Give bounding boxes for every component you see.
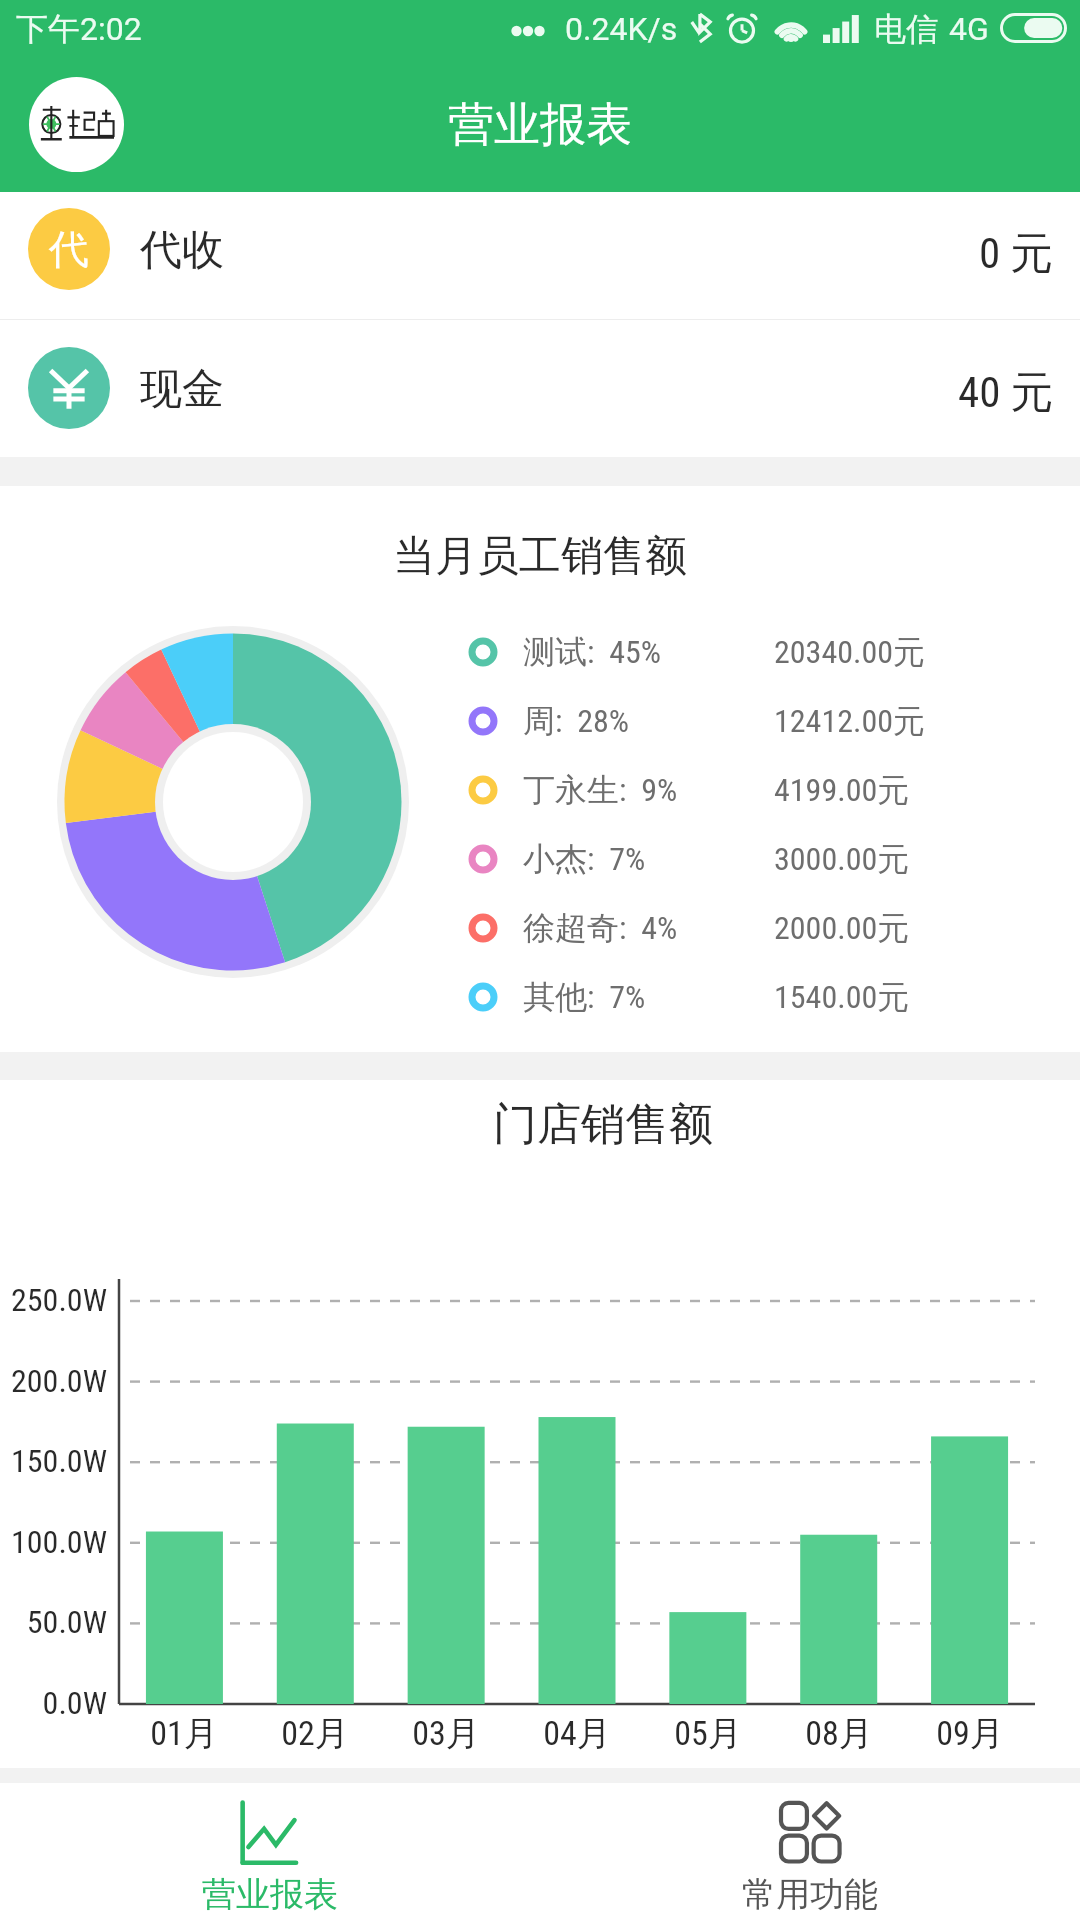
staticText: 其他: 7% — [523, 977, 646, 1017]
staticText: 03月 — [381, 1712, 511, 1755]
staticText: 1540.00元 — [774, 977, 910, 1017]
staticText: 04月 — [512, 1712, 642, 1755]
staticText: 营业报表 — [135, 1873, 405, 1916]
staticText: 0.24K/s — [565, 10, 678, 48]
staticText: 50.0W — [0, 1603, 107, 1641]
staticText: 4199.00元 — [774, 770, 910, 810]
staticText: 3000.00元 — [774, 839, 910, 879]
staticText: 周: 28% — [523, 701, 629, 741]
staticText: 门店销售额 — [403, 1097, 803, 1152]
staticText: 08月 — [774, 1712, 904, 1755]
staticText: 徐超奇: 4% — [523, 908, 678, 948]
staticText: 代 — [49, 224, 89, 274]
staticText: 2000.00元 — [774, 908, 910, 948]
staticText: 200.0W — [0, 1362, 107, 1400]
button[interactable]: 代 — [0, 192, 1080, 319]
staticText: 09月 — [905, 1712, 1035, 1755]
staticText: 250.0W — [0, 1281, 107, 1319]
staticText: 下午2:02 — [16, 9, 142, 49]
staticText: 小杰: 7% — [523, 839, 646, 879]
staticText: 150.0W — [0, 1442, 107, 1480]
button[interactable]: Logo — [29, 77, 124, 172]
staticText: 05月 — [643, 1712, 773, 1755]
staticText: 丁永生: 9% — [523, 770, 678, 810]
staticText: 12412.00元 — [774, 701, 926, 741]
staticText: 电信 — [874, 9, 938, 49]
staticText: 代收 — [140, 224, 224, 277]
button[interactable]: 常用功能 — [675, 1783, 945, 1920]
staticText: 现金 — [140, 363, 224, 416]
staticText: 营业报表 — [448, 96, 632, 154]
staticText: 02月 — [250, 1712, 380, 1755]
staticText: 40 元 — [958, 366, 1054, 420]
staticText: 20340.00元 — [774, 632, 926, 672]
other: 营业报表 — [234, 1801, 298, 1865]
staticText: 4G — [949, 10, 989, 48]
staticText: 0.0W — [0, 1684, 107, 1722]
button[interactable]: 营业报表 — [135, 1783, 405, 1920]
staticText: 100.0W — [0, 1523, 107, 1561]
staticText: 当月员工销售额 — [0, 530, 1080, 583]
other: 常用功能 — [781, 1801, 845, 1865]
staticText: 常用功能 — [675, 1873, 945, 1916]
button[interactable]: 现金 — [0, 320, 1080, 457]
staticText: 0 元 — [979, 227, 1054, 281]
staticText: 测试: 45% — [523, 632, 661, 672]
staticText: 01月 — [119, 1712, 249, 1755]
